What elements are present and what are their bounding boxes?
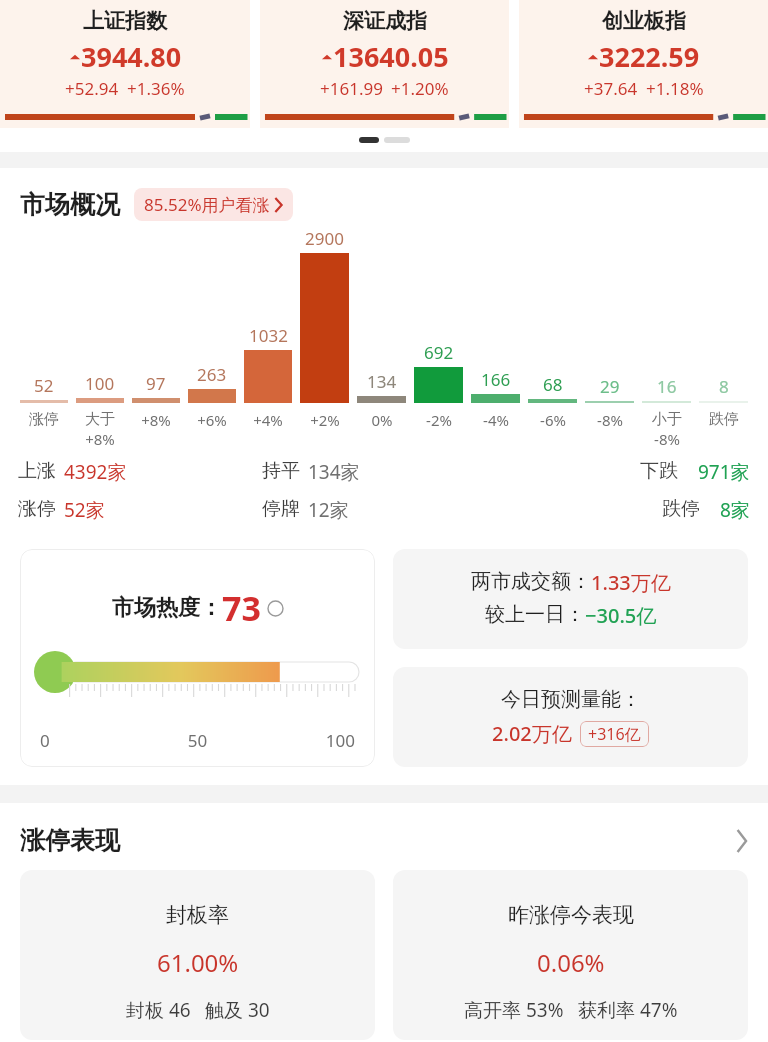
staticText: -4% [483,410,509,430]
staticText: 停牌 [262,497,300,521]
button[interactable]: 创业板指 [519,0,768,128]
staticText: 今日预测量能： [501,687,641,712]
button[interactable]: 85.52%用户看涨 [134,188,293,221]
staticText: 高开率 53% [464,997,564,1023]
staticText: -2% [426,410,452,430]
staticText: -6% [540,410,566,430]
button[interactable]: 两市成交额： [393,549,748,649]
staticText: 封板 46 [126,997,191,1023]
staticText: 触及 30 [205,997,270,1023]
staticText: 深证成指 [343,8,427,34]
button[interactable]: 封板率 [20,870,375,1040]
staticText: 跌停 [662,497,700,521]
staticText: 73 [222,585,261,631]
staticText: 100 [85,372,115,395]
button[interactable]: 涨停表现 [0,803,768,870]
button[interactable]: 昨涨停今表现 [393,870,748,1040]
button[interactable]: Help about market heat [267,600,284,617]
staticText: 85.52%用户看涨 [144,193,270,216]
staticText: 涨停表现 [20,825,120,856]
staticText: 较上一日： [485,602,585,627]
button[interactable]: 市场热度： [20,549,375,767]
staticText: 涨停 [18,497,56,521]
staticText: 971家 [698,459,750,485]
staticText: -8% [597,410,623,430]
staticText: 创业板指 [602,8,686,34]
button[interactable]: 深证成指 [260,0,509,128]
staticText: +6% [197,410,227,430]
staticText: 0 [40,729,145,752]
staticText: 263 [197,363,227,386]
staticText: +8% [141,410,171,430]
staticText: +52.94 [65,77,119,100]
staticText: 68 [543,373,563,396]
staticText: 8家 [720,497,750,523]
staticText: +4% [253,410,283,430]
staticText: 4392家 [64,459,127,485]
staticText: 166 [481,368,511,391]
staticText: 下跌 [640,459,678,483]
staticText: 跌停 [709,410,739,429]
staticText: +8% [85,429,115,449]
staticText: 1.33万亿 [591,569,671,596]
staticText: 52家 [64,497,105,523]
button[interactable]: 今日预测量能： [393,667,748,767]
staticText: 52 [34,374,54,397]
staticText: −30.5亿 [585,602,657,629]
staticText: +1.36% [127,77,185,100]
staticText: 获利率 47% [578,997,678,1023]
staticText: 50 [145,729,250,752]
staticText: 2900 [305,227,344,250]
staticText: +37.64 [584,77,638,100]
staticText: 692 [424,341,454,364]
staticText: +1.20% [391,77,449,100]
staticText: 100 [250,729,355,752]
staticText: 昨涨停今表现 [508,902,634,928]
staticText: 134 [367,370,397,393]
staticText: 持平 [262,459,300,483]
staticText: 134家 [308,459,360,485]
staticText: +161.99 [320,77,383,100]
staticText: 97 [146,372,166,395]
staticText: 市场热度： [112,594,222,622]
staticText: 2.02万亿 [492,720,572,747]
staticText: 小于 [652,410,682,429]
staticText: 8 [719,375,729,398]
staticText: 上涨 [18,459,56,483]
staticText: 大于 [85,410,115,429]
staticText: 封板率 [166,902,229,928]
staticText: 涨停 [29,410,59,429]
staticText: +316亿 [588,723,641,745]
staticText: 市场概况 [20,189,120,220]
staticText: 上证指数 [83,8,167,34]
staticText: 两市成交额： [471,569,591,594]
staticText: 12家 [308,497,349,523]
staticText: 29 [600,375,620,398]
staticText: 16 [657,375,677,398]
staticText: +1.18% [646,77,704,100]
staticText: 3222.59 [599,38,700,75]
staticText: 0.06% [537,946,605,979]
staticText: 0% [371,410,393,430]
staticText: 13640.05 [333,38,449,75]
staticText: 3944.80 [81,38,182,75]
staticText: +2% [310,410,340,430]
staticText: -8% [654,429,680,449]
staticText: 61.00% [157,946,239,979]
button[interactable]: 上证指数 [0,0,250,128]
staticText: 1032 [249,324,288,347]
